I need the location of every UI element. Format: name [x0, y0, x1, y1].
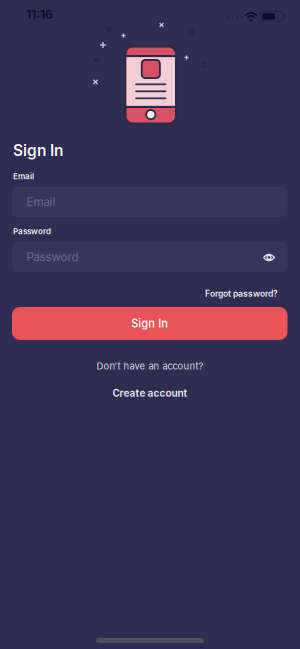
staticText: Forgot password?	[205, 288, 278, 299]
staticText: Sign In	[13, 141, 63, 160]
staticText: Email	[13, 171, 34, 181]
button[interactable]: Show password	[259, 247, 279, 267]
button[interactable]: Password	[12, 242, 287, 272]
staticText: Don’t have an account?	[96, 360, 203, 372]
staticText: Password	[26, 250, 78, 264]
staticText: 11:16	[26, 7, 53, 22]
staticText: Password	[13, 226, 51, 236]
button[interactable]: Sign In	[12, 307, 287, 340]
staticText: Sign In	[131, 317, 168, 330]
staticText: Email	[26, 195, 55, 209]
button[interactable]: Email	[12, 187, 287, 217]
button[interactable]: Create account	[112, 387, 187, 399]
button[interactable]: Forgot password?	[205, 288, 278, 299]
staticText: Create account	[112, 387, 187, 399]
